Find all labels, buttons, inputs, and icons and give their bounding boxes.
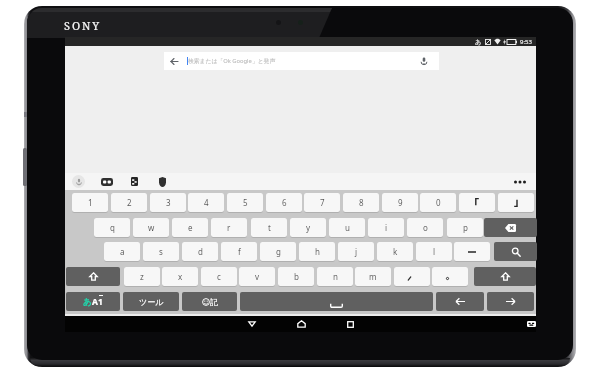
staticText: s — [159, 246, 163, 257]
staticText: あ — [83, 297, 92, 308]
button[interactable]: u — [329, 218, 365, 237]
staticText: 検索または「Ok Google」と発声 — [188, 57, 276, 65]
button[interactable]: Recent apps — [342, 316, 358, 332]
staticText: x — [178, 271, 183, 282]
button[interactable]: search — [494, 242, 537, 261]
staticText: q — [110, 222, 115, 233]
staticText: w — [148, 222, 155, 233]
staticText: 9:53 — [520, 38, 532, 46]
staticText: c — [217, 271, 221, 282]
other: Back — [170, 57, 179, 66]
button[interactable]: GIF — [100, 175, 113, 188]
button[interactable]: 0 — [420, 193, 456, 212]
staticText: 6 — [282, 197, 287, 208]
button[interactable]: p — [447, 218, 483, 237]
staticText: g — [276, 246, 281, 257]
staticText: r — [227, 222, 231, 233]
button[interactable] — [459, 193, 495, 212]
button[interactable]: d — [182, 242, 218, 261]
button[interactable]: Voice input — [72, 175, 85, 188]
staticText: 8 — [359, 197, 364, 208]
button[interactable]: b — [278, 267, 314, 286]
button[interactable]: Back — [164, 52, 439, 70]
button[interactable]: 6 — [266, 193, 302, 212]
button[interactable]: w — [133, 218, 169, 237]
staticText: z — [140, 271, 144, 282]
staticText: n — [333, 271, 338, 282]
button[interactable]: l — [416, 242, 452, 261]
button[interactable]: 2 — [111, 193, 147, 212]
staticText: 7 — [320, 197, 325, 208]
button[interactable]: k — [377, 242, 413, 261]
staticText: あ — [475, 38, 482, 46]
staticText: l — [433, 246, 436, 257]
button[interactable]: lang — [66, 292, 120, 311]
other: Voice search — [419, 56, 429, 66]
button[interactable]: c — [201, 267, 237, 286]
button[interactable]: 1 — [72, 193, 108, 212]
button[interactable]: y — [290, 218, 326, 237]
staticText: 5 — [243, 197, 248, 208]
button[interactable]: emoji — [182, 292, 237, 311]
button[interactable]: Clipboard — [156, 175, 169, 188]
button[interactable]: backspace — [484, 218, 537, 237]
staticText: 4 — [204, 197, 209, 208]
staticText: u — [345, 222, 350, 233]
button[interactable] — [454, 242, 490, 261]
button[interactable] — [498, 193, 534, 212]
button[interactable]: i — [368, 218, 404, 237]
button[interactable]: Switch keyboard — [523, 316, 539, 332]
staticText: a — [120, 246, 125, 257]
button[interactable]: space — [240, 292, 433, 311]
button[interactable]: n — [317, 267, 353, 286]
button[interactable]: Hide keyboard — [244, 316, 260, 332]
button[interactable]: Home — [293, 316, 309, 332]
button[interactable]: right — [487, 292, 534, 311]
staticText: 0 — [436, 197, 441, 208]
button[interactable]: h — [299, 242, 335, 261]
staticText: p — [463, 222, 468, 233]
staticText: v — [255, 271, 260, 282]
button[interactable]: j — [338, 242, 374, 261]
button[interactable]: s — [143, 242, 179, 261]
button[interactable]: 3 — [150, 193, 186, 212]
button[interactable]: left — [436, 292, 484, 311]
staticText: 3 — [166, 197, 171, 208]
staticText: j — [355, 246, 358, 257]
button[interactable]: o — [407, 218, 443, 237]
button[interactable]: shift — [474, 267, 536, 286]
button[interactable]: e — [172, 218, 208, 237]
button[interactable]: ツール — [123, 292, 179, 311]
button[interactable] — [394, 267, 430, 286]
button[interactable]: r — [211, 218, 247, 237]
button[interactable] — [432, 267, 468, 286]
staticText: 1 — [88, 197, 93, 208]
staticText: h — [315, 246, 320, 257]
staticText: y — [306, 222, 311, 233]
button[interactable]: 5 — [227, 193, 263, 212]
button[interactable]: 9 — [382, 193, 418, 212]
button[interactable]: 8 — [343, 193, 379, 212]
staticText: 記 — [210, 297, 218, 307]
button[interactable]: q — [94, 218, 130, 237]
button[interactable]: shift — [66, 267, 120, 286]
staticText: i — [385, 222, 388, 233]
button[interactable]: x — [162, 267, 198, 286]
staticText: m — [369, 271, 377, 282]
staticText: b — [294, 271, 299, 282]
button[interactable]: 7 — [304, 193, 340, 212]
staticText: f — [238, 246, 241, 257]
button[interactable]: f — [221, 242, 257, 261]
button[interactable]: z — [124, 267, 160, 286]
button[interactable]: v — [239, 267, 275, 286]
button[interactable]: More options — [513, 175, 526, 188]
button[interactable]: g — [260, 242, 296, 261]
button[interactable]: a — [104, 242, 140, 261]
staticText: d — [198, 246, 203, 257]
staticText: o — [423, 222, 428, 233]
button[interactable]: 4 — [188, 193, 224, 212]
button[interactable]: t — [251, 218, 287, 237]
staticText: ツール — [139, 297, 164, 307]
button[interactable]: Clipboard history — [128, 175, 141, 188]
button[interactable]: m — [355, 267, 391, 286]
